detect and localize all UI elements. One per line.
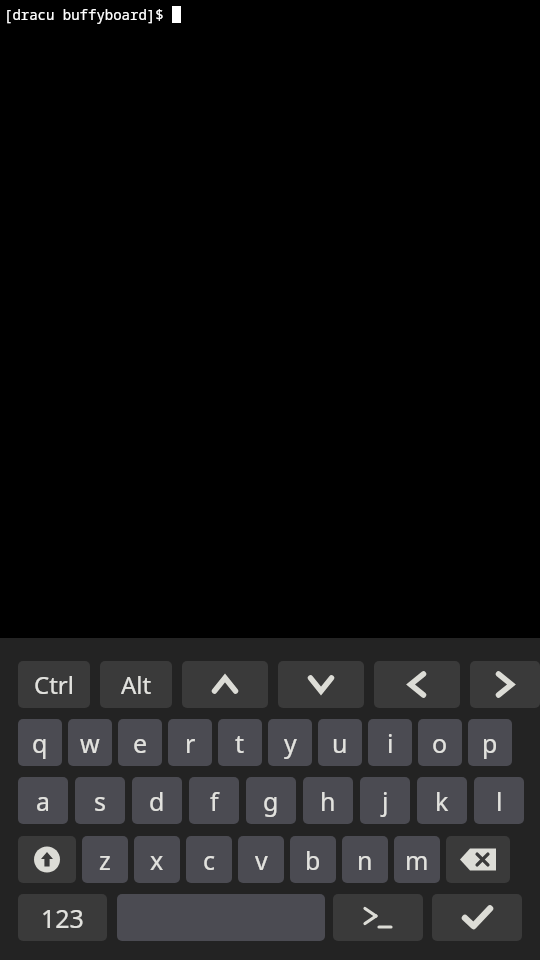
button[interactable]: u	[318, 719, 362, 766]
button[interactable]: q	[18, 719, 62, 766]
button[interactable]: n	[342, 836, 388, 883]
button[interactable]: w	[68, 719, 112, 766]
staticText: x	[150, 843, 164, 877]
staticText: a	[36, 784, 51, 818]
staticText: i	[387, 726, 394, 760]
button[interactable]: o	[418, 719, 462, 766]
button[interactable]: Down	[278, 661, 364, 708]
staticText: k	[435, 784, 449, 818]
staticText: m	[405, 843, 429, 877]
button[interactable]: g	[246, 777, 296, 824]
staticText: o	[432, 726, 448, 760]
staticText: w	[80, 726, 100, 760]
staticText: c	[203, 843, 216, 877]
staticText: j	[382, 784, 389, 818]
staticText: y	[284, 726, 297, 760]
button[interactable]: Left	[374, 661, 460, 708]
button[interactable]: Up	[182, 661, 268, 708]
button[interactable]: x	[134, 836, 180, 883]
button[interactable]: e	[118, 719, 162, 766]
button[interactable]: s	[75, 777, 125, 824]
staticText: [dracu buffyboard]$	[4, 5, 172, 24]
button[interactable]: y	[268, 719, 312, 766]
button[interactable]: Terminal prompt	[333, 894, 423, 941]
button[interactable]: a	[18, 777, 68, 824]
button[interactable]: j	[360, 777, 410, 824]
staticText: v	[255, 843, 268, 877]
staticText: r	[185, 726, 196, 760]
staticText: l	[496, 784, 503, 818]
staticText: q	[32, 726, 48, 760]
button[interactable]: l	[474, 777, 524, 824]
staticText: 123	[41, 901, 84, 935]
staticText: p	[482, 726, 498, 760]
staticText: f	[210, 784, 219, 818]
button[interactable]: i	[368, 719, 412, 766]
button[interactable]: m	[394, 836, 440, 883]
button[interactable]: Ctrl	[18, 661, 90, 708]
staticText: s	[94, 784, 106, 818]
button[interactable]: z	[82, 836, 128, 883]
button[interactable]: Enter	[432, 894, 522, 941]
button[interactable]: Backspace	[446, 836, 510, 883]
button[interactable]: h	[303, 777, 353, 824]
staticText: e	[133, 726, 148, 760]
staticText: t	[235, 726, 245, 760]
button[interactable]: r	[168, 719, 212, 766]
staticText: Ctrl	[34, 668, 74, 701]
button[interactable]: Shift	[18, 836, 76, 883]
staticText: d	[149, 784, 165, 818]
button[interactable]: 123	[18, 894, 107, 941]
staticText: b	[305, 843, 321, 877]
button[interactable]: c	[186, 836, 232, 883]
button[interactable]: p	[468, 719, 512, 766]
button[interactable]: t	[218, 719, 262, 766]
button[interactable]: Right	[470, 661, 540, 708]
button[interactable]: k	[417, 777, 467, 824]
staticText: g	[263, 784, 279, 818]
button[interactable]: v	[238, 836, 284, 883]
button[interactable]: f	[189, 777, 239, 824]
button[interactable]: b	[290, 836, 336, 883]
staticText: n	[357, 843, 373, 877]
staticText: Alt	[121, 668, 152, 701]
staticText: h	[320, 784, 336, 818]
staticText: u	[332, 726, 348, 760]
button[interactable]: Alt	[100, 661, 172, 708]
button[interactable]: d	[132, 777, 182, 824]
staticText: z	[99, 843, 111, 877]
